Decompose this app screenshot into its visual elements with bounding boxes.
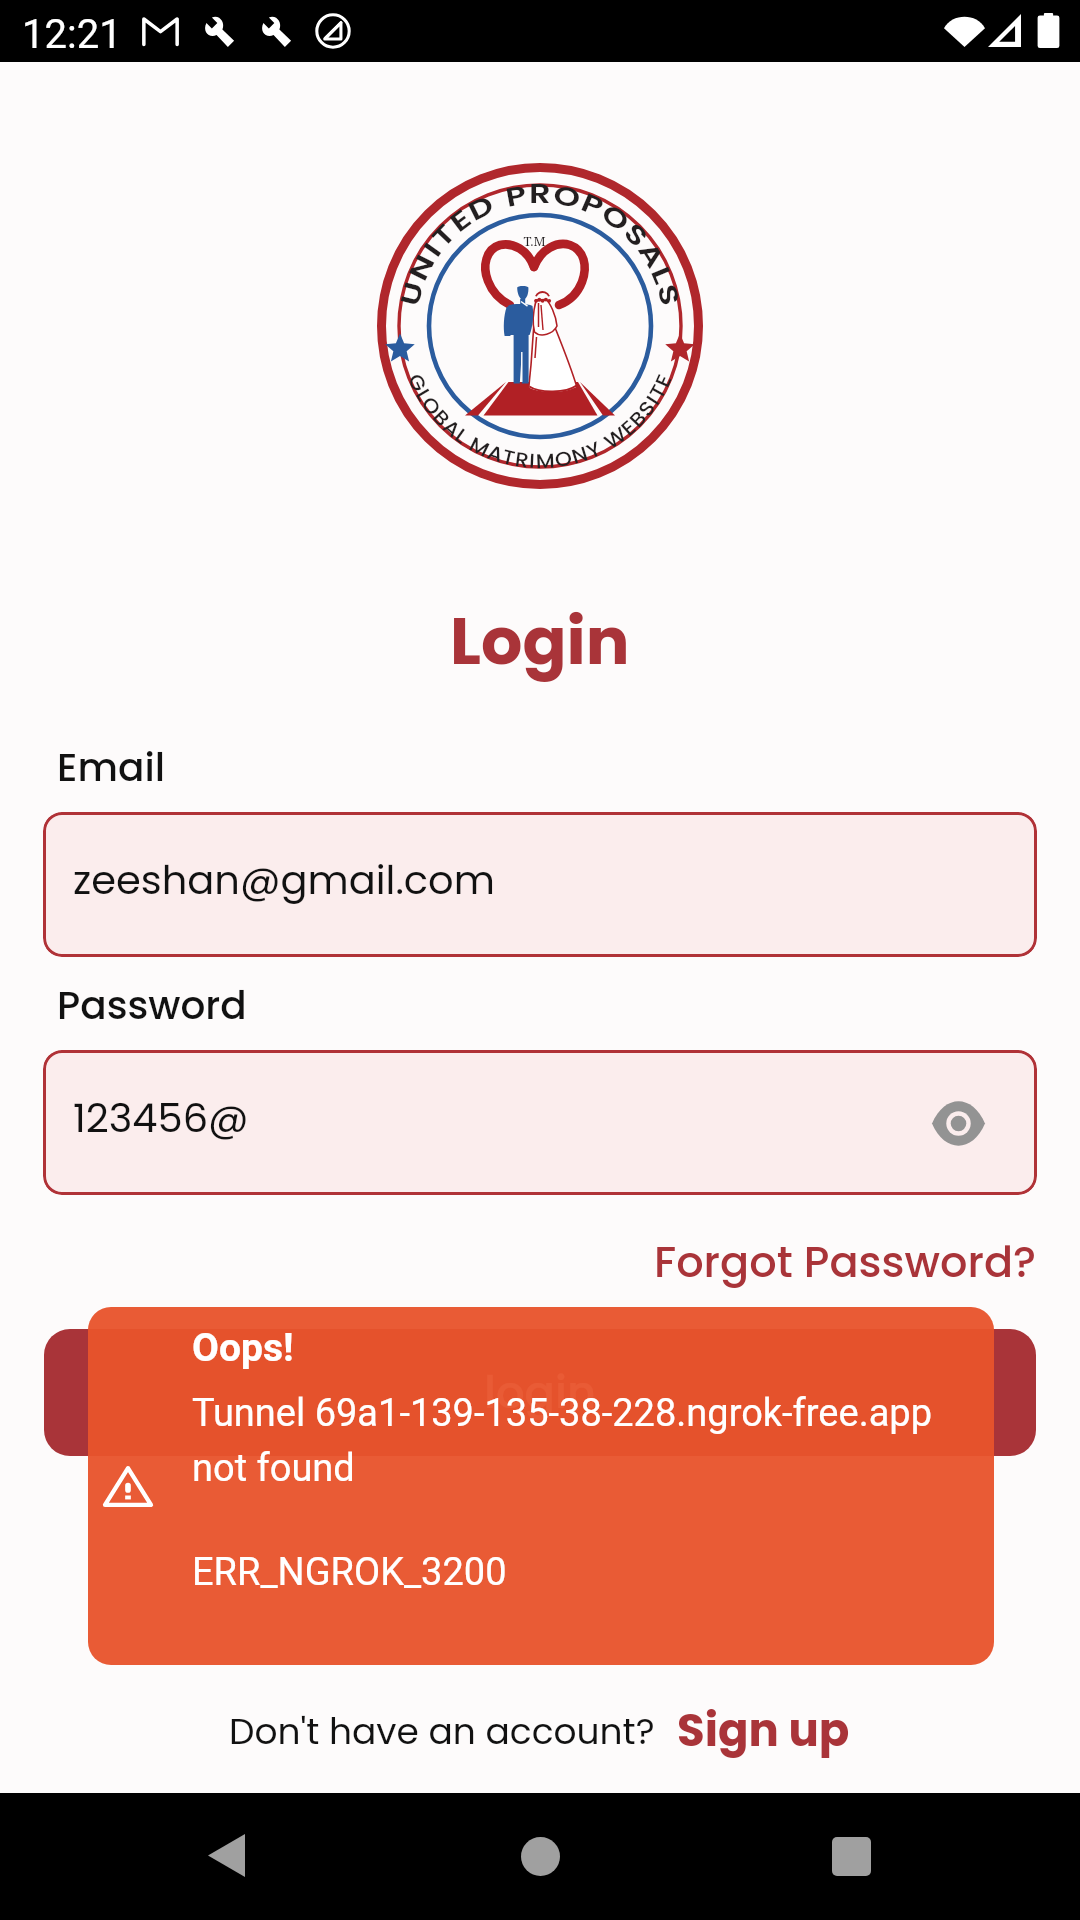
staticText: login xyxy=(484,1361,597,1424)
button[interactable]: Show password xyxy=(927,1092,989,1154)
staticText: Tunnel 69a1-139-135-38-228.ngrok-free.ap… xyxy=(192,1391,932,1490)
staticText: Login xyxy=(450,596,630,687)
button[interactable]: 123456@ xyxy=(43,1050,1037,1195)
button[interactable]: Sign up xyxy=(675,1695,852,1766)
staticText: 12:21 xyxy=(22,11,122,58)
button[interactable]: zeeshan@gmail.com xyxy=(43,812,1037,957)
button[interactable]: Back xyxy=(194,1823,258,1887)
staticText: Password xyxy=(57,978,247,1033)
staticText: Oops! xyxy=(192,1325,294,1371)
button[interactable]: Home xyxy=(508,1824,572,1888)
staticText: Forgot Password? xyxy=(654,1232,1037,1292)
staticText: Sign up xyxy=(677,1699,850,1762)
staticText: Don't have an account? xyxy=(229,1706,655,1756)
staticText: 123456@ xyxy=(73,1090,249,1146)
button[interactable]: Error notification xyxy=(88,1307,994,1665)
button[interactable]: Forgot Password? xyxy=(654,1228,1080,1296)
button[interactable]: Recents xyxy=(819,1824,883,1888)
staticText: zeeshan@gmail.com xyxy=(73,852,495,908)
staticText: ERR_NGROK_3200 xyxy=(192,1550,507,1595)
button[interactable]: login xyxy=(44,1329,1036,1456)
staticText: Email xyxy=(57,740,165,795)
